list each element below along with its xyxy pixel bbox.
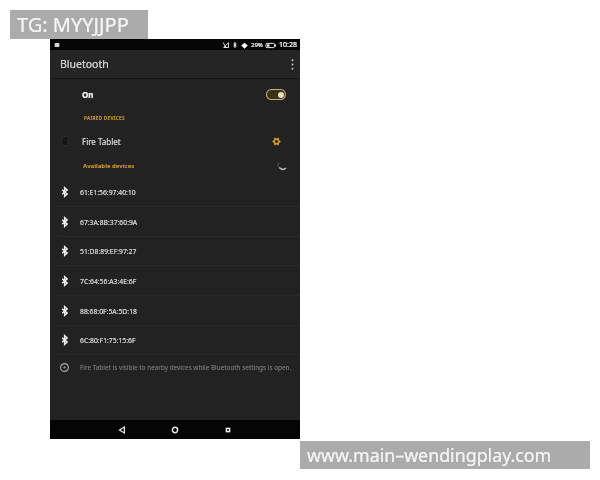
button[interactable]: Bluetooth on [266, 89, 286, 100]
button[interactable]: On [50, 79, 300, 109]
button[interactable]: Bluetooth [50, 50, 300, 78]
staticText: 6C:80:F1:75:15:6F [80, 336, 136, 345]
staticText: Bluetooth [60, 57, 109, 71]
staticText: 88:68:0F:5A:5D:18 [80, 307, 137, 316]
button[interactable]: 6C:80:F1:75:15:6F [50, 325, 300, 355]
staticText: Fire Tablet is visible to nearby devices… [80, 363, 292, 372]
staticText: Fire Tablet [82, 136, 121, 147]
button[interactable]: Back [109, 420, 135, 439]
button[interactable]: Available devices [50, 156, 300, 176]
button[interactable]: 67:3A:8B:37:60:9A [50, 207, 300, 237]
button[interactable]: 7C:64:56:A3:4E:6F [50, 266, 300, 296]
staticText: PAIRED DEVICES [84, 115, 125, 121]
button[interactable]: 88:68:0F:5A:5D:18 [50, 296, 300, 326]
staticText: TG: MYYJJPP [17, 11, 129, 38]
button[interactable]: More options [284, 50, 300, 78]
button[interactable]: Device settings [269, 134, 283, 148]
button[interactable]: Home [162, 420, 188, 439]
button[interactable]: 61:E1:56:97:40:10 [50, 177, 300, 207]
button[interactable]: Fire Tablet [50, 129, 300, 153]
button[interactable]: 51:D8:89:EF:97:27 [50, 236, 300, 266]
staticText: 7C:64:56:A3:4E:6F [80, 277, 137, 286]
staticText: 61:E1:56:97:40:10 [80, 188, 136, 197]
staticText: 10:28 [279, 40, 297, 50]
staticText: 67:3A:8B:37:60:9A [80, 218, 138, 227]
other: Information [60, 363, 69, 372]
staticText: 29% [251, 41, 263, 49]
staticText: Available devices [83, 162, 135, 170]
staticText: On [82, 89, 94, 100]
button[interactable]: Recents [215, 420, 241, 439]
staticText: www.main–wendingplay.com [307, 443, 552, 467]
staticText: 51:D8:89:EF:97:27 [80, 247, 137, 256]
